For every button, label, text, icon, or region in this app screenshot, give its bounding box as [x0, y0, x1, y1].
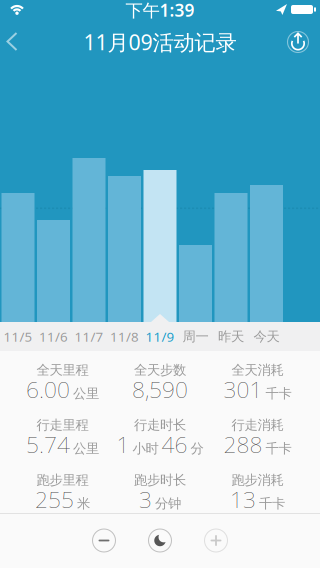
staticText: 11/8 — [110, 328, 139, 345]
staticText: 11/9 — [145, 328, 174, 345]
button[interactable]: 周一 — [177, 322, 213, 351]
button[interactable]: 今天 — [248, 322, 284, 351]
staticText: 千卡 — [265, 440, 291, 457]
staticText: 11/6 — [39, 328, 68, 345]
button[interactable] — [0, 20, 25, 64]
staticText: 301 — [223, 374, 262, 404]
staticText: 跑步里程 — [36, 472, 88, 488]
staticText: 288 — [223, 429, 262, 459]
button[interactable]: 昨天 — [213, 322, 249, 351]
staticText: 公里 — [73, 440, 99, 457]
staticText: 255 — [35, 484, 74, 514]
staticText: 行走时长 — [134, 417, 186, 433]
button[interactable]: 11/7 — [71, 322, 107, 351]
staticText: 米 — [77, 495, 90, 512]
staticText: 下午1:39 — [125, 0, 194, 21]
button[interactable]: 11/9 — [142, 322, 178, 351]
staticText: 全天消耗 — [231, 362, 283, 378]
staticText: 全天里程 — [36, 362, 88, 378]
staticText: 全天步数 — [134, 362, 186, 378]
staticText: 46 — [161, 429, 187, 459]
staticText: 跑步消耗 — [231, 472, 283, 488]
staticText: 今天 — [253, 328, 279, 345]
button[interactable] — [277, 20, 319, 64]
staticText: 公里 — [73, 385, 99, 402]
staticText: 6.00 — [26, 374, 70, 404]
staticText: 11月09活动记录 — [83, 28, 236, 56]
staticText: 1 — [116, 429, 129, 459]
button[interactable]: 11/5 — [0, 322, 36, 351]
button[interactable]: 11/8 — [106, 322, 142, 351]
staticText: 5.74 — [26, 429, 70, 459]
button[interactable]: 11/6 — [35, 322, 71, 351]
staticText: 13 — [230, 484, 256, 514]
staticText: 11/5 — [3, 328, 32, 345]
staticText: 分钟 — [155, 495, 181, 512]
staticText: 昨天 — [218, 328, 244, 345]
staticText: 行走里程 — [36, 417, 88, 433]
staticText: 3 — [139, 484, 152, 514]
staticText: 跑步时长 — [134, 472, 186, 488]
staticText: 小时 — [132, 440, 158, 457]
staticText: 千卡 — [259, 495, 285, 512]
button[interactable] — [204, 529, 227, 552]
staticText: 8,590 — [132, 374, 188, 404]
button[interactable] — [92, 529, 115, 552]
staticText: 11/7 — [74, 328, 103, 345]
staticText: 周一 — [182, 328, 208, 345]
button[interactable] — [148, 529, 171, 552]
staticText: 分 — [190, 440, 203, 457]
staticText: 千卡 — [265, 385, 291, 402]
staticText: 行走消耗 — [231, 417, 283, 433]
